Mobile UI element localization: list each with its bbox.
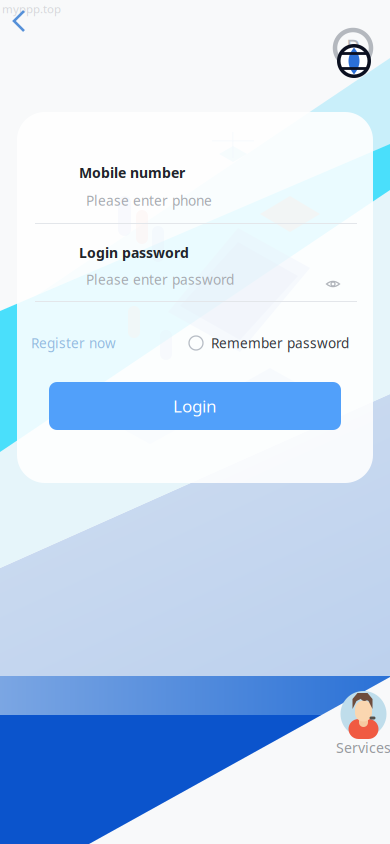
staticText: Login [173,394,217,418]
staticText: myppp.top [2,1,61,17]
staticText: Login password [79,243,189,262]
staticText: Register now [31,334,116,352]
staticText: Remember password [211,334,349,352]
button[interactable]: Language [331,38,377,84]
staticText: Mobile number [79,163,185,182]
button[interactable]: Back [5,3,49,47]
button[interactable]: Show password [318,271,348,297]
button[interactable]: Login [49,382,341,430]
button[interactable]: Remember password [189,331,349,355]
button[interactable]: Services [336,691,390,757]
staticText: Please enter phone [86,191,212,210]
staticText: R [346,33,360,63]
staticText: Please enter password [86,270,234,289]
button[interactable]: Register now [31,331,121,355]
staticText: Services [336,738,390,757]
